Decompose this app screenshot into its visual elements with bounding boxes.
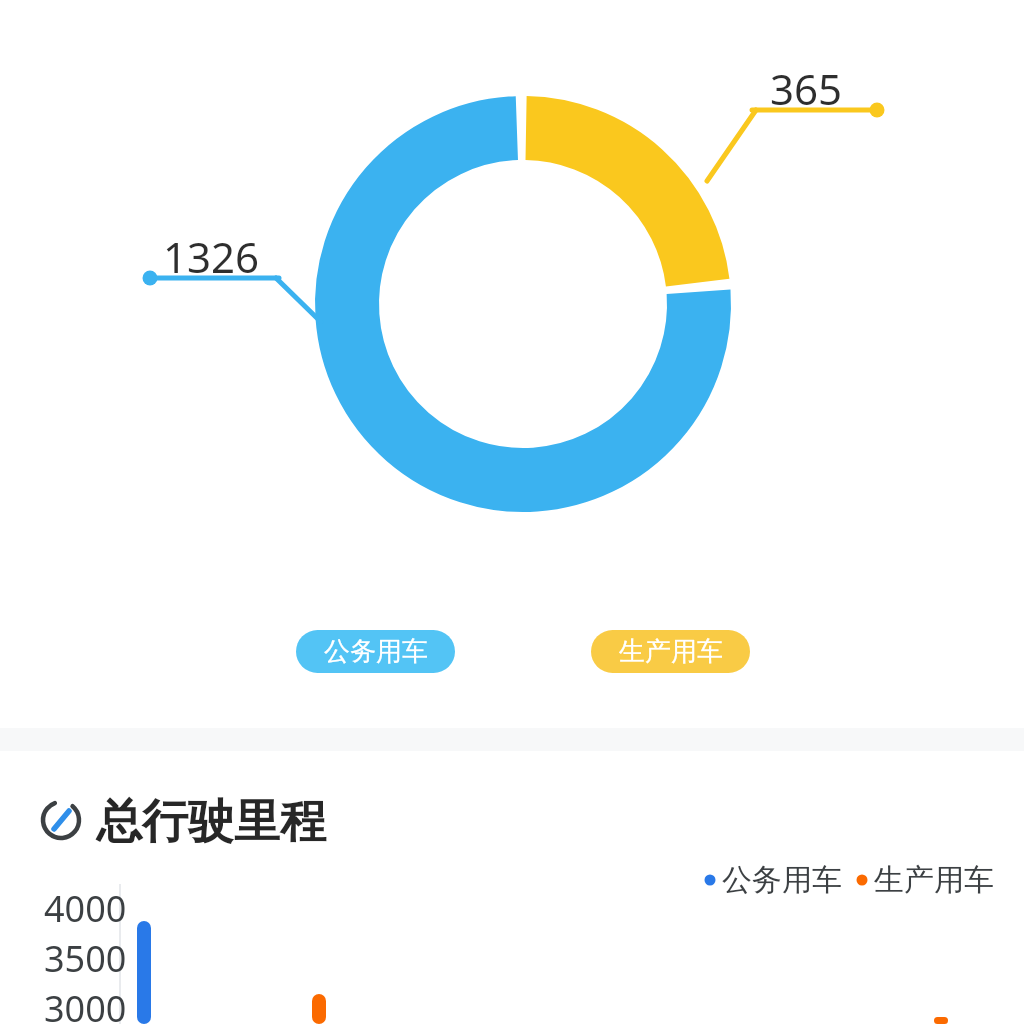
staticText: 3500 [44,934,127,983]
staticText: 生产用车 [619,635,723,668]
staticText: 总行驶里程 [96,793,326,851]
other: Total mileage [44,803,80,839]
button[interactable]: 生产用车 [591,630,750,673]
staticText: 4000 [44,884,127,933]
staticText: 生产用车 [874,861,994,899]
button[interactable]: 公务用车 [296,630,455,673]
staticText: 1326 [163,228,260,285]
staticText: 公务用车 [722,861,842,899]
staticText: 公务用车 [324,635,428,668]
staticText: 365 [770,60,843,117]
staticText: 3000 [44,984,127,1024]
